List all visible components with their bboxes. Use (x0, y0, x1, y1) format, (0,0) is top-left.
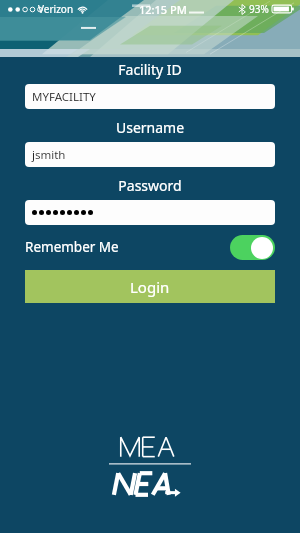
staticText: jsmith (32, 147, 66, 163)
button[interactable] (25, 200, 275, 225)
staticText: Verizon (38, 2, 74, 16)
staticText: Login (130, 277, 170, 297)
button[interactable]: jsmith (25, 142, 275, 167)
staticText: 12:15 PM (139, 2, 187, 17)
staticText: 93% (249, 2, 269, 16)
staticText: MYFACILITY (32, 89, 96, 105)
button[interactable]: MYFACILITY (25, 84, 275, 109)
staticText: Username (0, 118, 300, 137)
staticText: Password (0, 176, 300, 195)
button[interactable]: Remember Me (25, 234, 275, 260)
staticText: Remember Me (25, 238, 119, 256)
button[interactable]: Login (25, 270, 275, 303)
staticText: Facility ID (0, 60, 300, 79)
other: Remember Me toggle (230, 235, 275, 260)
